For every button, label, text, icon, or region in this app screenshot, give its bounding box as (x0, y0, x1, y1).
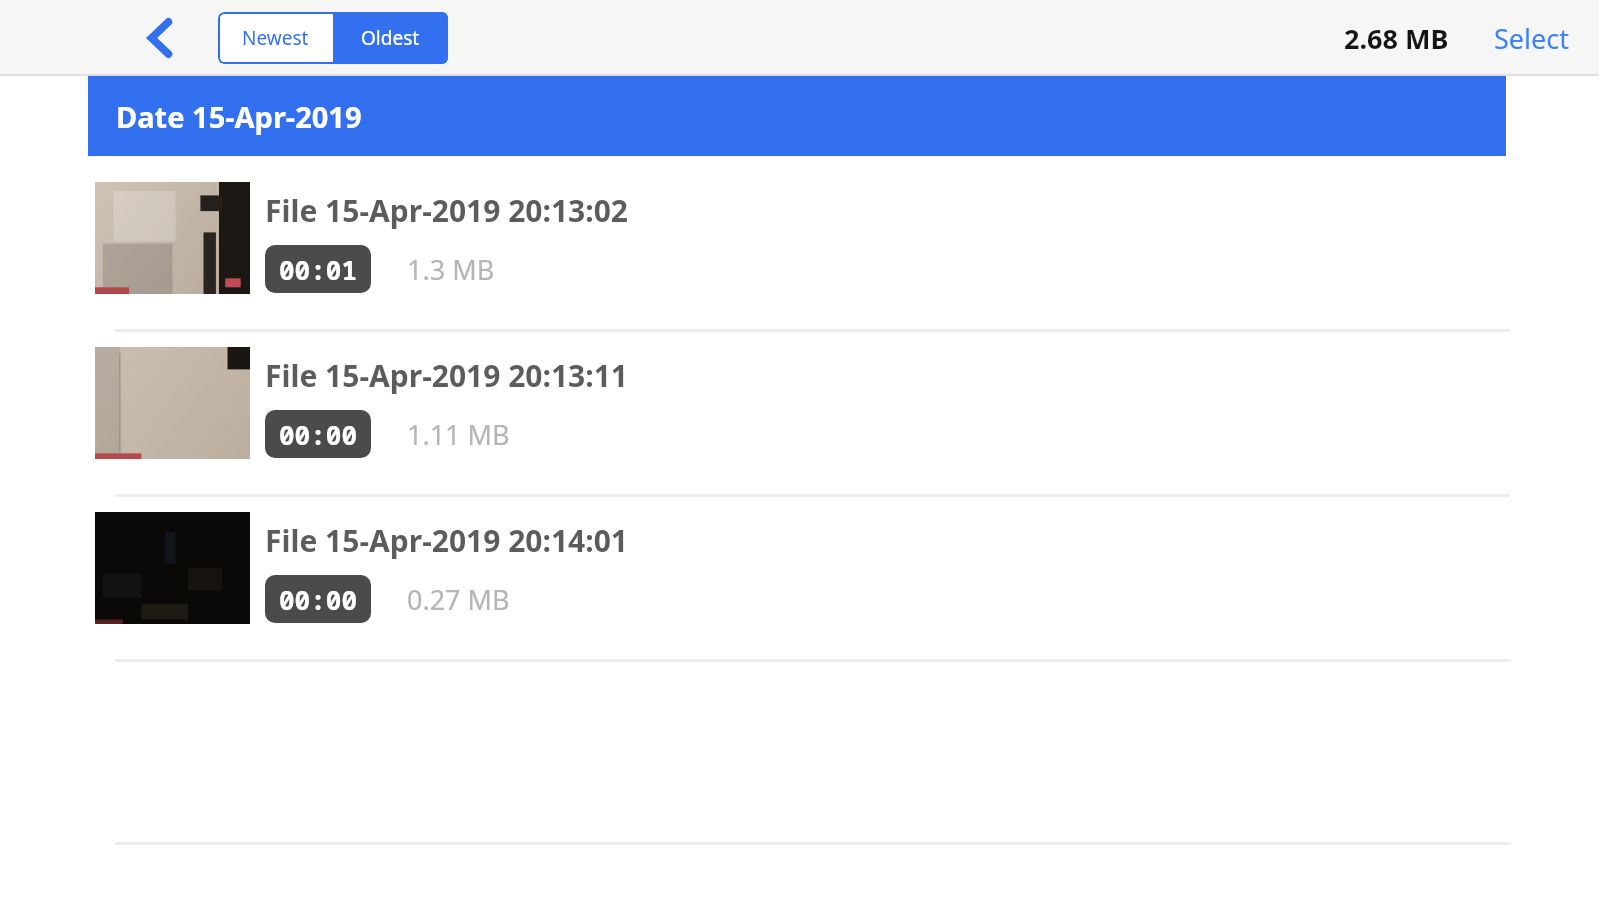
button[interactable]: Newest (218, 12, 333, 64)
staticText: 1.11 MB (407, 416, 510, 453)
staticText: 00:00 (279, 582, 358, 617)
button[interactable]: Select (1488, 10, 1575, 67)
button[interactable]: File 15-Apr-2019 20:13:02 (0, 174, 1599, 339)
button[interactable]: Oldest (333, 12, 448, 64)
staticText: 0.27 MB (407, 581, 510, 618)
staticText: 00:00 (279, 417, 358, 452)
staticText: File 15-Apr-2019 20:13:11 (265, 355, 628, 396)
button[interactable]: File 15-Apr-2019 20:14:01 (0, 504, 1599, 669)
staticText: Newest (242, 25, 309, 51)
staticText: File 15-Apr-2019 20:13:02 (265, 190, 628, 231)
staticText: Select (1494, 20, 1569, 57)
staticText: Date 15-Apr-2019 (116, 97, 362, 136)
staticText: Oldest (361, 25, 420, 51)
button[interactable]: Back (132, 8, 188, 68)
button[interactable]: Date 15-Apr-2019 (88, 76, 1506, 156)
button[interactable]: File 15-Apr-2019 20:13:11 (0, 339, 1599, 504)
staticText: File 15-Apr-2019 20:14:01 (265, 520, 628, 561)
staticText: 1.3 MB (407, 251, 495, 288)
staticText: 00:01 (279, 252, 358, 287)
staticText: 2.68 MB (1344, 20, 1449, 57)
